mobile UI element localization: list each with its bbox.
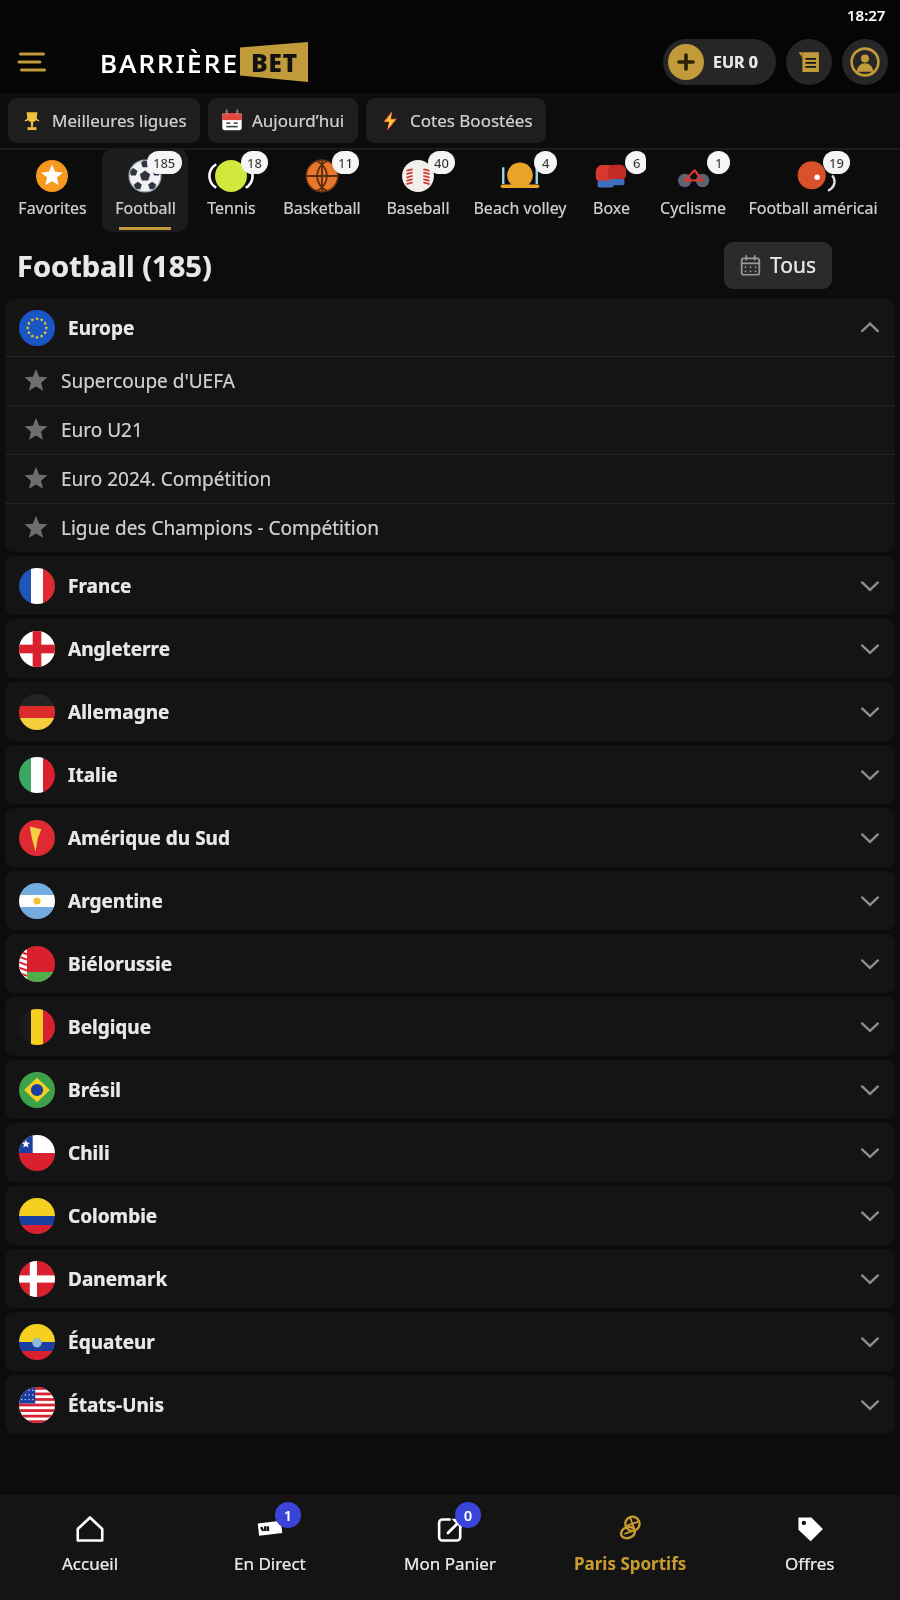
staticText: BET bbox=[251, 45, 298, 79]
button[interactable]: BARRIÈRE bbox=[100, 42, 308, 82]
staticText: Football américai bbox=[748, 197, 878, 219]
button[interactable]: 11 bbox=[272, 149, 372, 232]
staticText: Chili bbox=[68, 1140, 110, 1166]
staticText: Colombie bbox=[68, 1203, 158, 1229]
staticText: Favorites bbox=[18, 197, 87, 219]
button[interactable]: Euro 2024. Compétition bbox=[5, 455, 895, 503]
button[interactable]: Offres bbox=[720, 1495, 900, 1600]
staticText: Italie bbox=[68, 762, 118, 788]
staticText: Meilleures ligues bbox=[52, 109, 187, 132]
button[interactable]: 19 bbox=[740, 149, 885, 232]
staticText: Football (185) bbox=[17, 246, 212, 285]
staticText: Offres bbox=[785, 1552, 835, 1575]
staticText: 40 bbox=[434, 154, 449, 172]
button[interactable]: Menu bbox=[6, 36, 58, 88]
button[interactable]: Ligue des Champions - Compétition bbox=[5, 504, 895, 552]
staticText: Angleterre bbox=[68, 636, 171, 662]
staticText: Allemagne bbox=[68, 699, 170, 725]
button[interactable]: Amérique du Sud bbox=[5, 808, 895, 867]
button[interactable]: Favorites bbox=[4, 149, 100, 232]
staticText: En Direct bbox=[234, 1552, 306, 1575]
staticText: Paris Sportifs bbox=[574, 1552, 687, 1575]
button[interactable]: Paris Sportifs bbox=[540, 1495, 720, 1600]
staticText: 19 bbox=[829, 154, 844, 172]
staticText: Europe bbox=[68, 315, 135, 341]
staticText: France bbox=[68, 573, 132, 599]
button[interactable]: Argentine bbox=[5, 871, 895, 930]
button[interactable]: Danemark bbox=[5, 1249, 895, 1308]
staticText: Basketball bbox=[283, 197, 361, 219]
staticText: Biélorussie bbox=[68, 951, 173, 977]
button[interactable]: Équateur bbox=[5, 1312, 895, 1371]
button[interactable]: Mes paris bbox=[786, 39, 832, 85]
button[interactable]: Biélorussie bbox=[5, 934, 895, 993]
button[interactable]: 40 bbox=[372, 149, 464, 232]
button[interactable]: Supercoupe d'UEFA bbox=[5, 357, 895, 405]
button[interactable]: Angleterre bbox=[5, 619, 895, 678]
button[interactable]: 1 bbox=[646, 149, 740, 232]
button[interactable]: Tous bbox=[724, 242, 832, 289]
staticText: Amérique du Sud bbox=[68, 825, 230, 851]
staticText: 6 bbox=[633, 154, 641, 172]
staticText: Ligue des Champions - Compétition bbox=[61, 515, 379, 541]
button[interactable]: Belgique bbox=[5, 997, 895, 1056]
staticText: 0 bbox=[464, 1506, 473, 1525]
staticText: 4 bbox=[542, 154, 550, 172]
staticText: 18 bbox=[247, 154, 262, 172]
staticText: Mon Panier bbox=[404, 1552, 496, 1575]
button[interactable]: Meilleures ligues bbox=[8, 98, 200, 143]
staticText: Baseball bbox=[386, 197, 450, 219]
button[interactable]: France bbox=[5, 556, 895, 615]
button[interactable]: 1 bbox=[180, 1495, 360, 1600]
button[interactable]: Allemagne bbox=[5, 682, 895, 741]
button[interactable]: 6 bbox=[576, 149, 646, 232]
staticText: Argentine bbox=[68, 888, 163, 914]
staticText: Euro 2024. Compétition bbox=[61, 466, 272, 492]
button[interactable]: Colombie bbox=[5, 1186, 895, 1245]
staticText: Danemark bbox=[68, 1266, 168, 1292]
staticText: Football bbox=[115, 197, 176, 219]
button[interactable]: 4 bbox=[464, 149, 576, 232]
button[interactable]: 18 bbox=[190, 149, 272, 232]
button[interactable]: Accueil bbox=[0, 1495, 180, 1600]
staticText: 11 bbox=[338, 154, 353, 172]
button[interactable]: Brésil bbox=[5, 1060, 895, 1119]
staticText: Tous bbox=[770, 251, 816, 280]
button[interactable]: Chili bbox=[5, 1123, 895, 1182]
staticText: Belgique bbox=[68, 1014, 152, 1040]
staticText: BARRIÈRE bbox=[100, 45, 240, 80]
staticText: États-Unis bbox=[68, 1392, 165, 1418]
staticText: 1 bbox=[715, 154, 723, 172]
staticText: 185 bbox=[153, 154, 176, 172]
staticText: EUR 0 bbox=[713, 51, 758, 73]
staticText: Aujourd’hui bbox=[252, 109, 345, 132]
staticText: Supercoupe d'UEFA bbox=[61, 368, 235, 394]
button[interactable]: EUR 0 bbox=[663, 39, 776, 85]
button[interactable]: 185 bbox=[102, 149, 188, 232]
staticText: Tennis bbox=[207, 197, 256, 219]
staticText: Brésil bbox=[68, 1077, 121, 1103]
button[interactable]: 0 bbox=[360, 1495, 540, 1600]
button[interactable]: Aujourd’hui bbox=[208, 98, 358, 143]
staticText: 1 bbox=[284, 1506, 293, 1525]
button[interactable]: Italie bbox=[5, 745, 895, 804]
button[interactable]: Europe bbox=[5, 299, 895, 356]
button[interactable]: Compte bbox=[842, 39, 888, 85]
staticText: Accueil bbox=[62, 1552, 119, 1575]
staticText: 18:27 bbox=[847, 5, 886, 25]
button[interactable]: États-Unis bbox=[5, 1375, 895, 1434]
staticText: Beach volley bbox=[473, 197, 567, 219]
staticText: Boxe bbox=[593, 197, 630, 219]
staticText: Cyclisme bbox=[660, 197, 726, 219]
button[interactable]: Euro U21 bbox=[5, 406, 895, 454]
staticText: Cotes Boostées bbox=[410, 109, 533, 132]
staticText: Euro U21 bbox=[61, 417, 143, 443]
button[interactable]: Cotes Boostées bbox=[366, 98, 546, 143]
staticText: Équateur bbox=[68, 1329, 155, 1355]
